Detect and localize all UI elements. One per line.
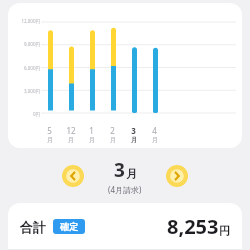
button[interactable]: 前の月	[62, 165, 84, 187]
staticText: 5	[47, 125, 52, 136]
staticText: 月	[47, 136, 53, 144]
staticText: 8,253	[167, 213, 219, 240]
staticText: 12	[66, 125, 76, 136]
button[interactable]: 次の月	[166, 165, 188, 187]
staticText: 月	[110, 136, 116, 144]
staticText: 3,000円	[23, 88, 40, 94]
staticText: 合計	[20, 219, 46, 235]
staticText: 月	[68, 136, 74, 144]
staticText: 12,000円	[21, 18, 40, 24]
staticText: 2	[110, 125, 115, 136]
staticText: 円	[219, 224, 230, 238]
staticText: 1	[89, 125, 94, 136]
staticText: 9,000円	[23, 41, 40, 47]
staticText: (4月請求)	[108, 184, 142, 195]
staticText: 月	[89, 136, 95, 144]
staticText: 月	[152, 136, 158, 144]
staticText: 0円	[32, 111, 40, 117]
staticText: 3	[131, 125, 136, 136]
staticText: 4	[152, 125, 157, 136]
button[interactable]: 合計	[8, 203, 242, 250]
staticText: 3	[114, 157, 125, 183]
staticText: 月	[126, 167, 137, 181]
staticText: 月	[131, 136, 137, 144]
staticText: 確定	[60, 221, 78, 232]
staticText: 6,000円	[23, 65, 40, 71]
